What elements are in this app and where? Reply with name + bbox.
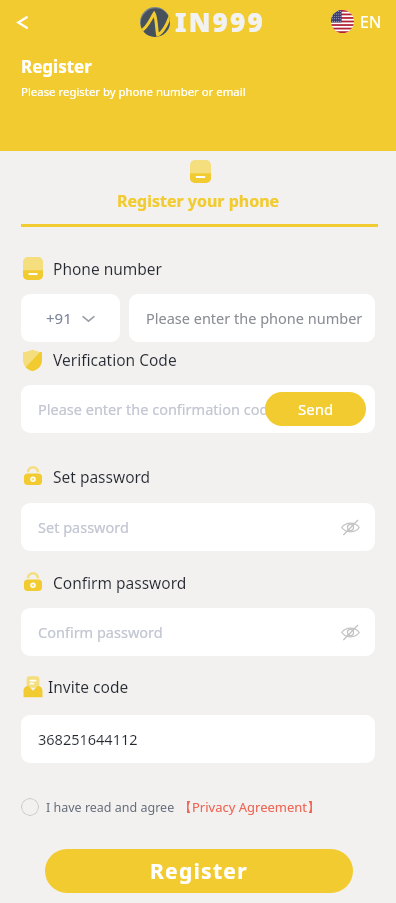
- staticText: Phone number: [53, 258, 163, 279]
- button[interactable]: Confirm password: [21, 608, 375, 656]
- staticText: 【Privacy Agreement】: [179, 798, 321, 816]
- staticText: 368251644112: [38, 729, 138, 749]
- staticText: Register: [21, 55, 92, 78]
- staticText: IN999: [175, 4, 265, 39]
- button[interactable]: Show password: [338, 515, 362, 539]
- staticText: Confirm password: [38, 622, 163, 642]
- staticText: Send: [298, 399, 334, 419]
- button[interactable]: I have read and agree: [21, 798, 321, 816]
- staticText: Confirm password: [53, 572, 187, 593]
- staticText: I have read and agree: [46, 799, 175, 816]
- staticText: EN: [360, 11, 382, 33]
- staticText: Verification Code: [53, 349, 177, 370]
- staticText: Set password: [38, 517, 129, 537]
- button[interactable]: Please enter the phone number: [129, 294, 375, 342]
- button[interactable]: EN: [331, 10, 382, 33]
- button[interactable]: Register: [45, 849, 353, 893]
- staticText: Please enter the phone number: [146, 308, 363, 328]
- staticText: Please register by phone number or email: [21, 84, 246, 100]
- button[interactable]: Show password: [338, 620, 362, 644]
- staticText: Set password: [53, 466, 151, 487]
- button[interactable]: +91: [21, 294, 120, 342]
- staticText: Please enter the confirmation code: [38, 399, 277, 419]
- button[interactable]: Send: [265, 392, 366, 426]
- button[interactable]: Set password: [21, 503, 375, 551]
- staticText: +91: [46, 308, 72, 328]
- staticText: Register your phone: [117, 190, 280, 212]
- button[interactable]: Back: [9, 9, 35, 35]
- staticText: Invite code: [48, 676, 129, 697]
- staticText: Register: [150, 857, 248, 886]
- button[interactable]: 368251644112: [21, 715, 375, 763]
